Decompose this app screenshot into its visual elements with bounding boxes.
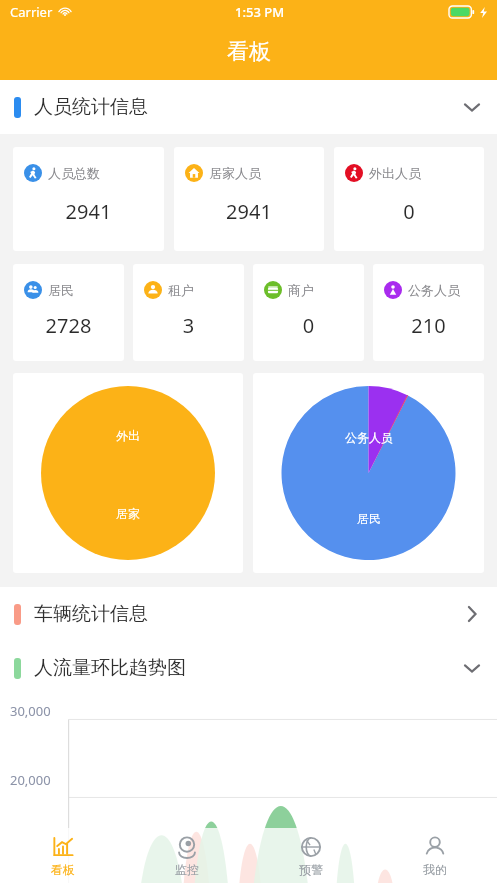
staticText: 人员统计信息 bbox=[34, 95, 148, 119]
other: Expand bbox=[461, 603, 483, 625]
staticText: 外出人员 bbox=[369, 165, 421, 181]
staticText: 外出 bbox=[116, 428, 140, 443]
staticText: 20,000 bbox=[10, 771, 51, 789]
button[interactable]: 租户 bbox=[133, 264, 244, 361]
staticText: 居民 bbox=[357, 511, 381, 526]
button[interactable]: 公务人员 bbox=[373, 264, 484, 361]
button[interactable]: 人流量环比趋势图 bbox=[0, 641, 497, 695]
staticText: 0 bbox=[345, 198, 473, 225]
staticText: 公务人员 bbox=[408, 282, 460, 298]
other: Collapse bbox=[461, 657, 483, 679]
button[interactable]: 预警 bbox=[249, 828, 373, 883]
staticText: 居家人员 bbox=[209, 165, 261, 181]
button[interactable]: 外出 bbox=[13, 373, 243, 573]
staticText: 商户 bbox=[288, 282, 314, 298]
staticText: 看板 bbox=[51, 862, 75, 877]
staticText: 210 bbox=[384, 312, 473, 339]
staticText: 2941 bbox=[24, 198, 153, 225]
staticText: 居家 bbox=[116, 506, 140, 521]
staticText: 人流量环比趋势图 bbox=[34, 656, 186, 680]
staticText: 0 bbox=[264, 312, 353, 339]
staticText: 1:53 PM bbox=[235, 3, 285, 21]
button[interactable]: 商户 bbox=[253, 264, 364, 361]
staticText: 公务人员 bbox=[345, 430, 393, 445]
button[interactable]: 人员总数 bbox=[13, 147, 164, 251]
button[interactable]: 居民 bbox=[13, 264, 124, 361]
staticText: 租户 bbox=[168, 282, 194, 298]
staticText: 预警 bbox=[299, 862, 323, 877]
staticText: 车辆统计信息 bbox=[34, 602, 148, 626]
staticText: 监控 bbox=[175, 862, 199, 877]
staticText: 看板 bbox=[227, 38, 271, 66]
other: Collapse bbox=[461, 96, 483, 118]
staticText: 人员总数 bbox=[48, 165, 100, 181]
staticText: 居民 bbox=[48, 282, 74, 298]
staticText: Carrier bbox=[10, 3, 53, 21]
button[interactable]: 人员统计信息 bbox=[0, 80, 497, 134]
button[interactable]: 车辆统计信息 bbox=[0, 587, 497, 641]
staticText: 3 bbox=[144, 312, 233, 339]
staticText: 2728 bbox=[24, 312, 113, 339]
button[interactable]: 外出人员 bbox=[334, 147, 484, 251]
button[interactable]: 居家人员 bbox=[174, 147, 324, 251]
button[interactable]: 监控 bbox=[125, 828, 249, 883]
button[interactable]: 我的 bbox=[373, 828, 497, 883]
button[interactable]: 看板 bbox=[0, 828, 125, 883]
staticText: 2941 bbox=[185, 198, 313, 225]
staticText: 我的 bbox=[423, 862, 447, 877]
button[interactable]: 公务人员 bbox=[253, 373, 484, 573]
staticText: 30,000 bbox=[10, 702, 51, 720]
